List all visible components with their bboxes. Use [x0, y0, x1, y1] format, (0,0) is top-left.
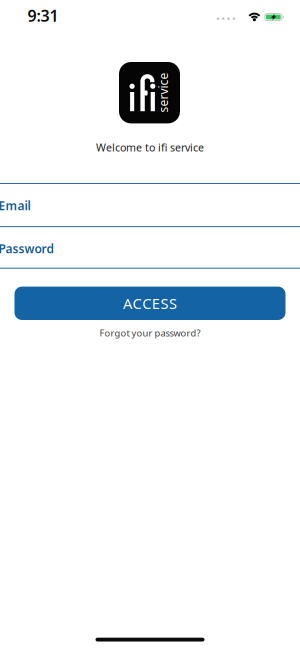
- staticText: Welcome to ifi service: [96, 140, 204, 154]
- staticText: Password: [0, 241, 54, 256]
- button[interactable]: Password: [0, 227, 300, 269]
- button[interactable]: Email: [0, 183, 300, 227]
- staticText: service: [143, 84, 183, 100]
- button[interactable]: ACCESS: [14, 287, 285, 320]
- button[interactable]: Forgot your password?: [99, 327, 200, 339]
- staticText: Email: [0, 198, 30, 214]
- staticText: ACCESS: [123, 294, 177, 313]
- staticText: Forgot your password?: [99, 327, 200, 339]
- staticText: 9:31: [27, 5, 58, 26]
